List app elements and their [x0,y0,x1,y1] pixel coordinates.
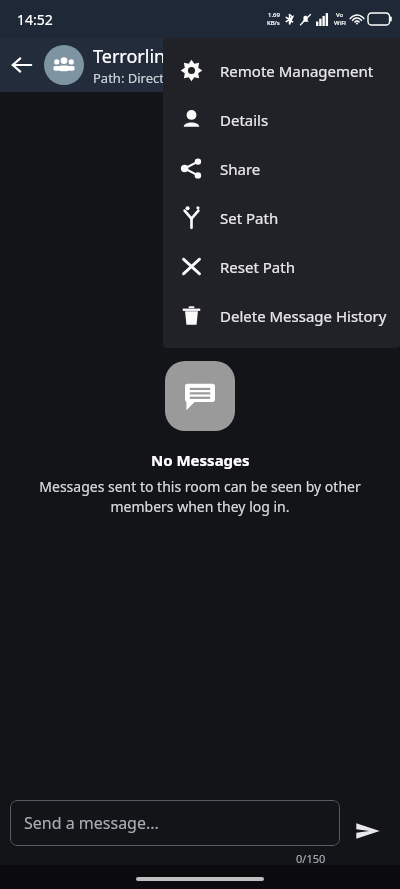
button[interactable]: Send a message... [10,800,340,846]
staticText: 1.69 [268,11,280,19]
staticText: Path: Direct [93,69,164,87]
button[interactable]: Reset Path [163,242,400,291]
staticText: Send a message... [24,812,159,834]
button[interactable]: Share [163,144,400,193]
staticText: Terrorlink [93,44,175,69]
staticText: 14:52 [17,10,53,29]
staticText: Share [220,159,261,179]
staticText: Set Path [220,208,279,228]
staticText: Reset Path [220,257,295,277]
button[interactable]: Details [163,95,400,144]
button[interactable]: Back [0,43,44,87]
staticText: Remote Management [220,61,374,81]
button[interactable]: Remote Management [163,46,400,95]
staticText: 0/150 [296,851,326,865]
staticText: Delete Message History [220,306,387,326]
staticText: WiFi [334,19,346,27]
button[interactable]: Send [348,811,388,851]
staticText: Vo [336,11,344,19]
staticText: Details [220,110,269,130]
button[interactable]: Set Path [163,193,400,242]
button[interactable]: Delete Message History [163,291,400,340]
staticText: No Messages [151,450,250,470]
staticText: KB/s [267,19,280,27]
staticText: Messages sent to this room can be seen b… [36,477,364,516]
